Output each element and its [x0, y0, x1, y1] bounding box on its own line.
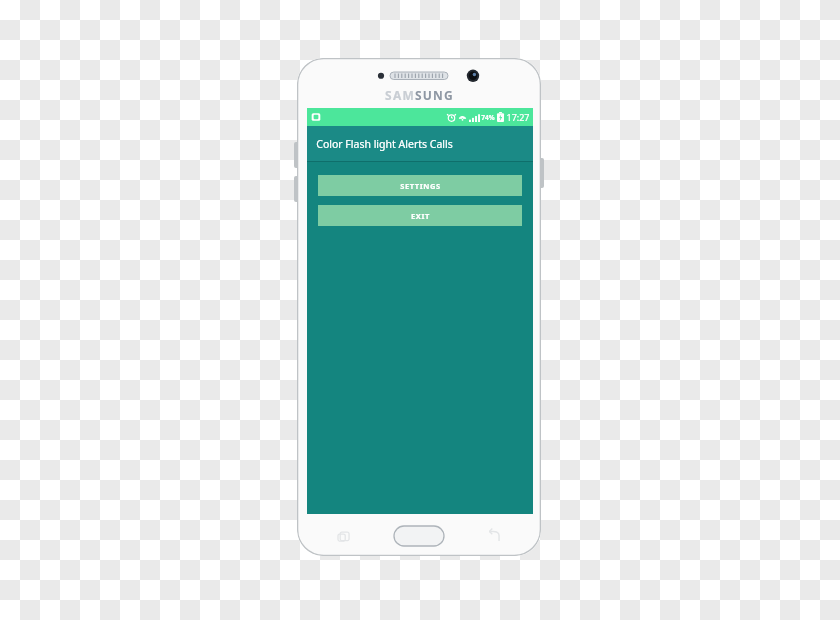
- staticText: Color Flash light Alerts Calls: [316, 137, 453, 151]
- staticText: SETTINGS: [400, 181, 441, 191]
- staticText: EXIT: [411, 211, 430, 221]
- staticText: SUNG: [415, 87, 454, 103]
- button[interactable]: Back: [483, 525, 505, 547]
- staticText: 74%: [481, 113, 495, 122]
- button[interactable]: EXIT: [318, 205, 522, 226]
- staticText: 17:27: [506, 111, 530, 123]
- button[interactable]: SETTINGS: [318, 175, 522, 196]
- staticText: SAM: [385, 87, 415, 103]
- button[interactable]: Home: [394, 526, 444, 546]
- button[interactable]: Recent apps: [333, 525, 355, 547]
